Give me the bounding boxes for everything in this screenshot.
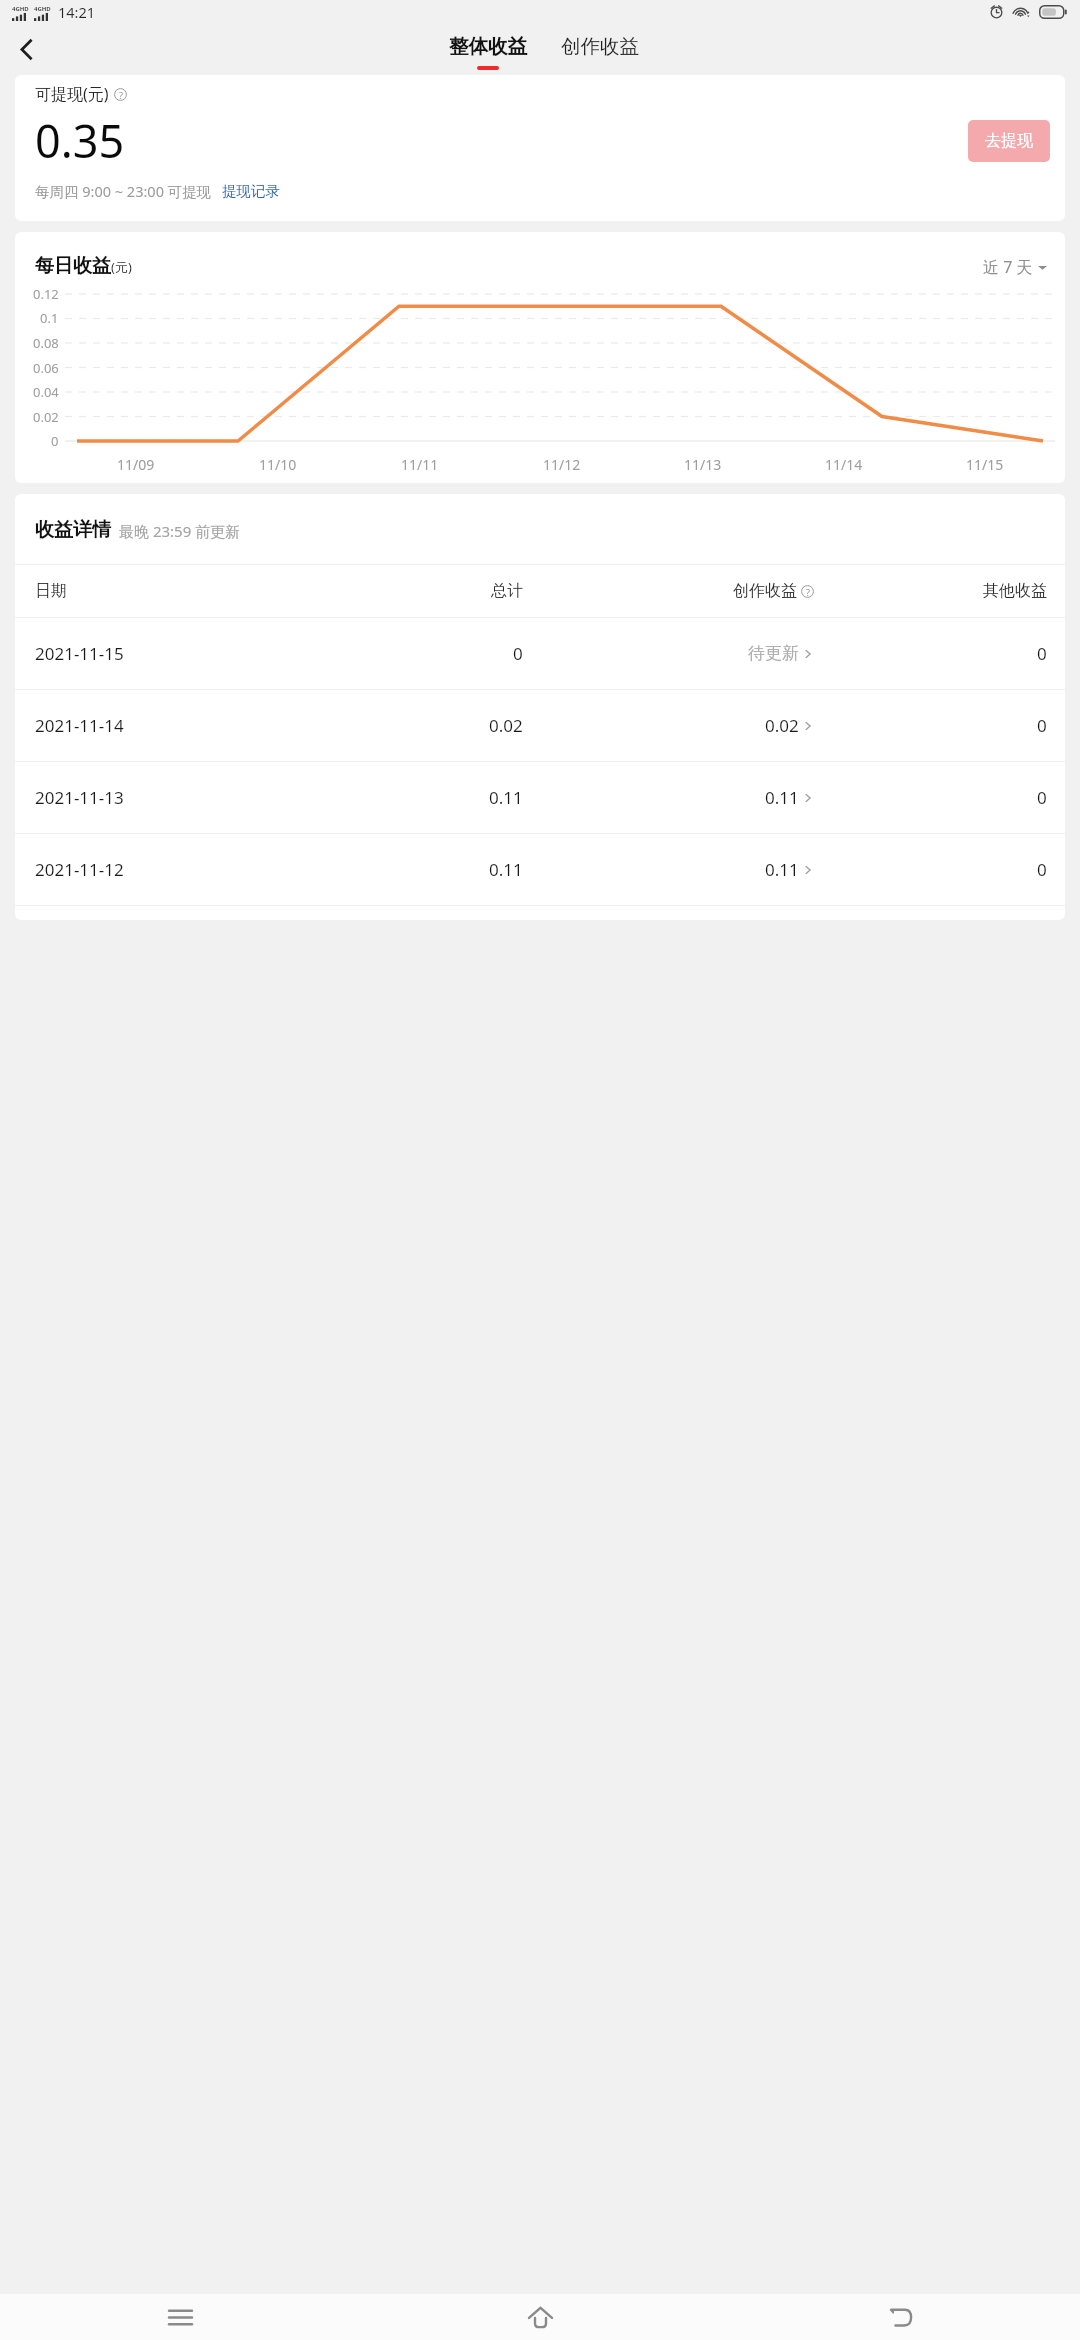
staticText: 0: [1037, 858, 1047, 881]
staticText: 总计: [491, 581, 523, 601]
staticText: 0.35: [35, 110, 125, 171]
staticText: 11/13: [684, 455, 722, 474]
staticText: ?: [119, 89, 123, 101]
button[interactable]: 近 7 天: [983, 256, 1047, 278]
staticText: 0.11: [489, 786, 523, 809]
staticText: 2021-11-14: [35, 714, 124, 737]
staticText: 0.1: [40, 309, 59, 327]
staticText: 提现记录: [222, 182, 280, 200]
button[interactable]: 提现记录: [222, 182, 280, 200]
staticText: 0: [1037, 714, 1047, 737]
staticText: 2021-11-15: [35, 642, 124, 665]
other: Wi-Fi: [1013, 5, 1030, 18]
staticText: 创作收益: [561, 34, 639, 59]
staticText: 0.11: [765, 858, 799, 881]
staticText: 每周四 9:00 ~ 23:00 可提现: [35, 181, 212, 201]
staticText: 0.11: [489, 858, 523, 881]
staticText: 11/10: [259, 455, 297, 474]
staticText: 0: [513, 642, 523, 665]
button[interactable]: Home: [360, 2294, 720, 2340]
staticText: 11/14: [825, 455, 863, 474]
staticText: 2021-11-13: [35, 786, 124, 809]
staticText: 整体收益: [449, 34, 527, 59]
staticText: 日期: [35, 581, 67, 601]
staticText: 4GHD: [12, 5, 29, 13]
button[interactable]: Back: [720, 2294, 1080, 2340]
staticText: 其他收益: [983, 581, 1047, 601]
staticText: 11/12: [543, 455, 581, 474]
staticText: 11/11: [401, 455, 439, 474]
staticText: 0: [1037, 786, 1047, 809]
button[interactable]: Back: [2, 25, 50, 73]
button[interactable]: 2021-11-13: [15, 762, 1065, 833]
staticText: ?: [806, 586, 810, 598]
staticText: 0.08: [33, 334, 59, 352]
staticText: 最晚 23:59 前更新: [119, 521, 241, 541]
button[interactable]: 创作收益: [555, 34, 645, 59]
staticText: 近 7 天: [983, 256, 1033, 278]
button[interactable]: 去提现: [968, 120, 1050, 162]
staticText: 11/15: [966, 455, 1004, 474]
button[interactable]: 2021-11-12: [15, 834, 1065, 905]
other: Alarm: [989, 4, 1004, 19]
staticText: 0.06: [33, 359, 59, 377]
staticText: 2021-11-12: [35, 858, 124, 881]
button[interactable]: 2021-11-14: [15, 690, 1065, 761]
button[interactable]: Recent apps: [0, 2294, 360, 2340]
staticText: 每日收益: [35, 254, 111, 278]
staticText: 0: [1037, 642, 1047, 665]
staticText: 0.02: [489, 714, 523, 737]
staticText: 待更新: [748, 643, 799, 664]
staticText: 0.02: [33, 408, 59, 426]
staticText: 14:21: [58, 2, 96, 22]
staticText: 收益详情: [35, 518, 111, 542]
staticText: 0: [51, 432, 59, 450]
staticText: 可提现(元): [35, 83, 109, 105]
button[interactable]: 2021-11-15: [15, 618, 1065, 689]
staticText: 4GHD: [34, 5, 51, 13]
button[interactable]: 整体收益: [443, 34, 533, 70]
staticText: 0.02: [765, 714, 799, 737]
staticText: 创作收益: [733, 581, 797, 601]
staticText: 0.11: [765, 786, 799, 809]
staticText: 0.04: [33, 383, 59, 401]
other: Battery: [1039, 5, 1067, 19]
staticText: 0.12: [33, 285, 59, 303]
staticText: 去提现: [985, 131, 1033, 151]
staticText: (元): [111, 258, 132, 276]
staticText: 11/09: [117, 455, 155, 474]
